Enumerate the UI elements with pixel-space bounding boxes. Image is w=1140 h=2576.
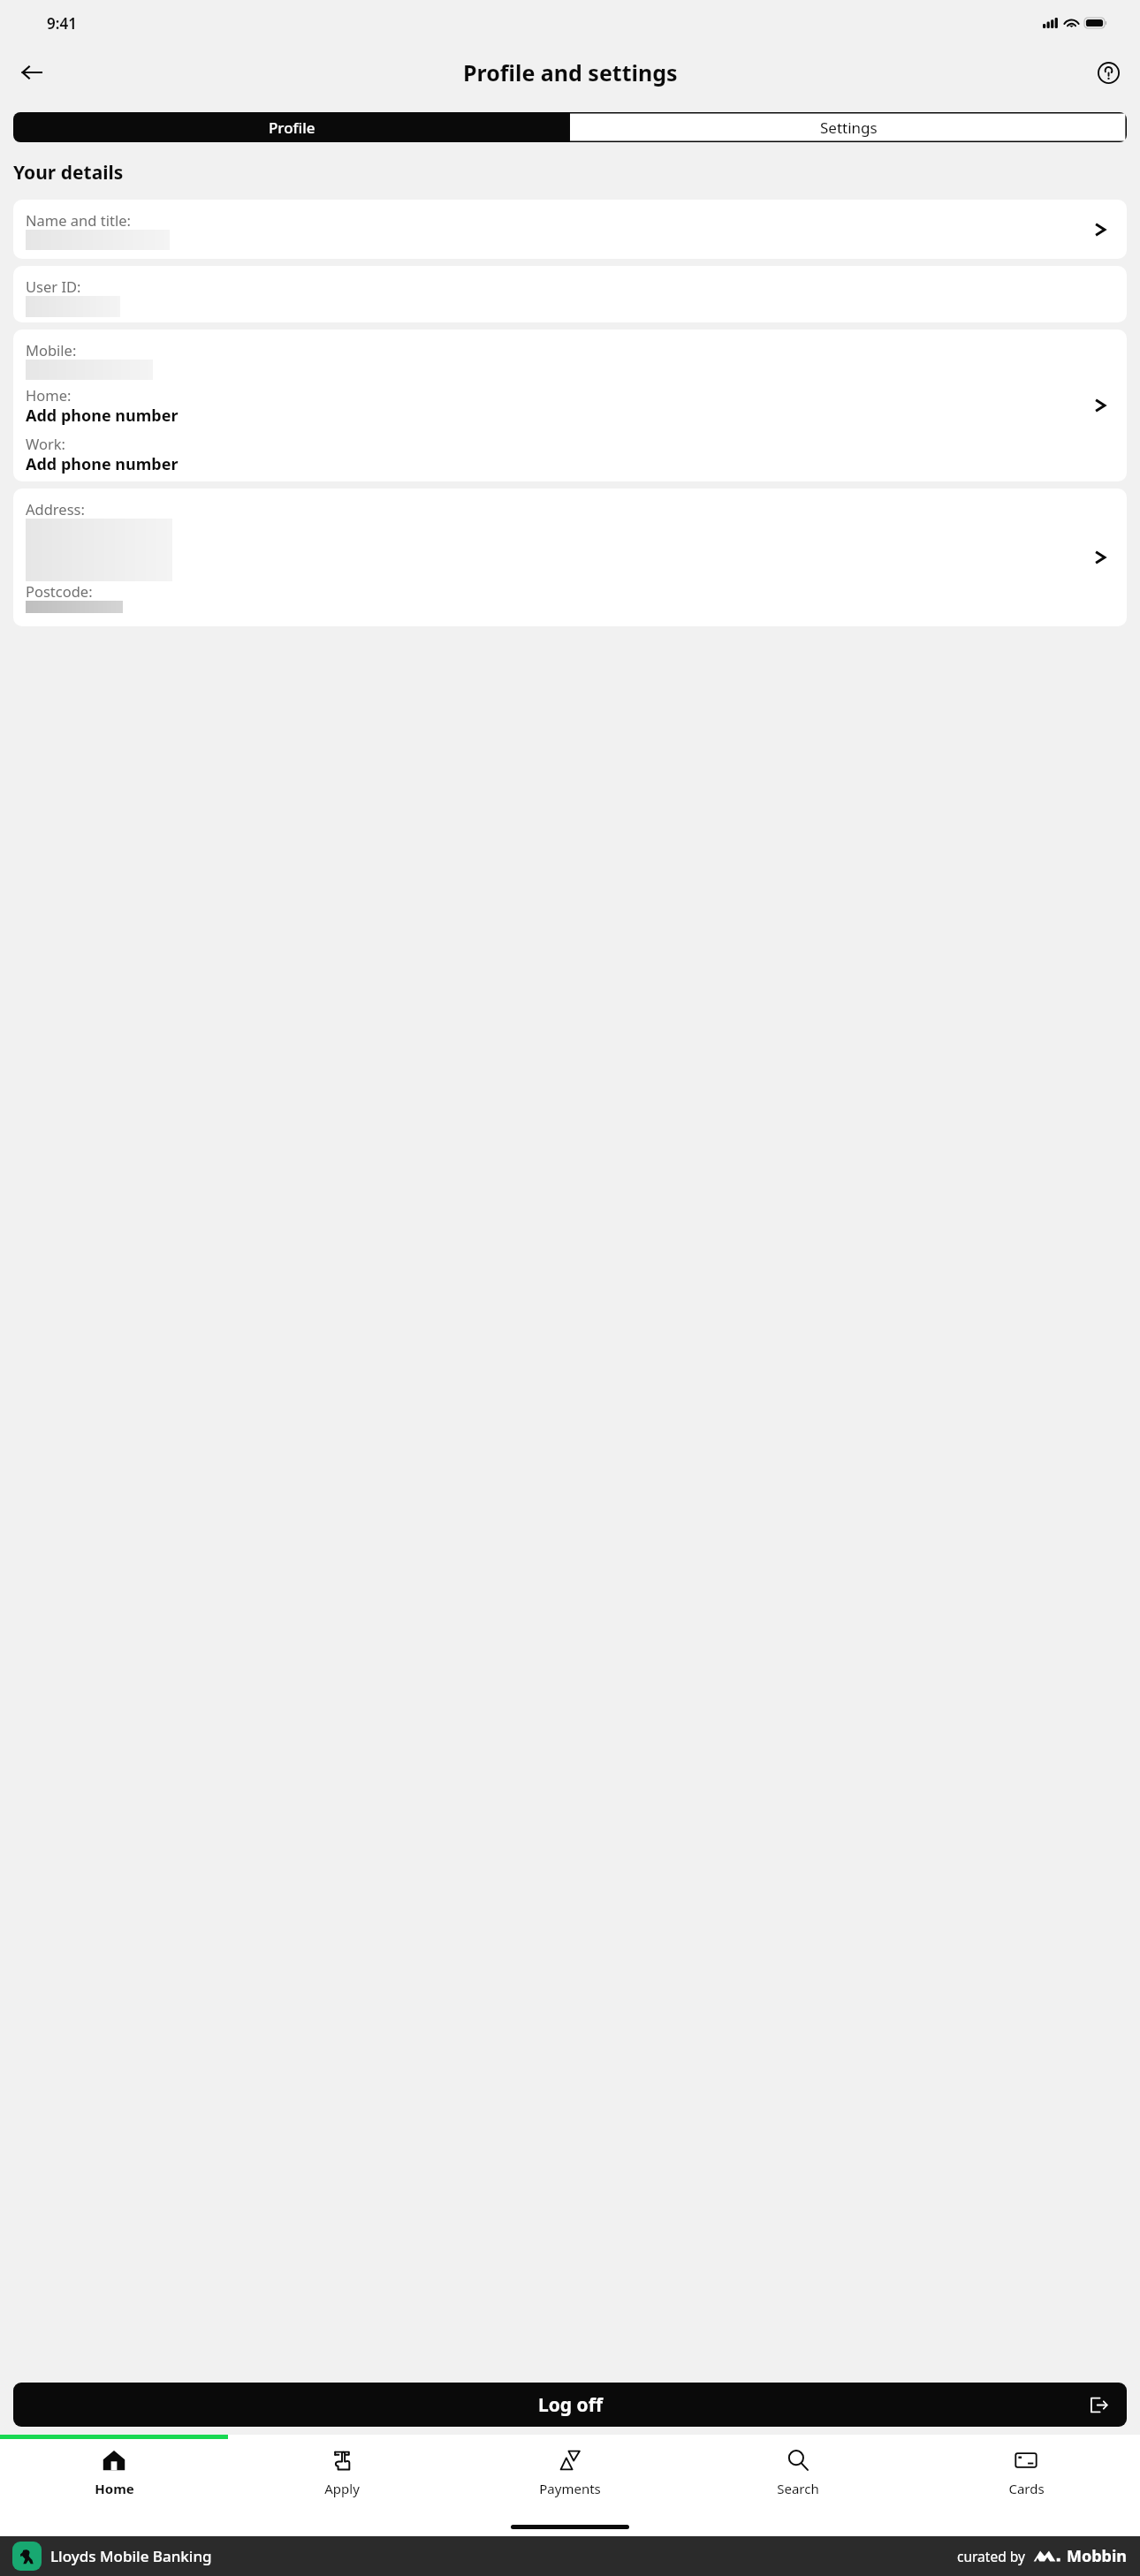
button[interactable]: Log off [13, 2383, 1127, 2427]
staticText: Your details [13, 160, 124, 186]
staticText: Add phone number [26, 405, 179, 427]
staticText: 9:41 [47, 13, 77, 34]
staticText: Add phone number [26, 453, 179, 475]
staticText: Mobbin [1067, 2545, 1128, 2567]
staticText: Log off [538, 2392, 603, 2418]
staticText: User ID: [26, 277, 81, 296]
staticText: Cards [1008, 2480, 1045, 2497]
staticText: Profile and settings [463, 57, 678, 87]
button[interactable]: Back [11, 51, 53, 94]
staticText: Apply [324, 2480, 360, 2497]
button[interactable]: Settings [570, 112, 1127, 142]
staticText: curated by [957, 2547, 1025, 2565]
staticText: Home [95, 2480, 134, 2497]
button[interactable]: Cards [912, 2439, 1140, 2517]
button[interactable]: Home [0, 2439, 228, 2517]
staticText: Name and title: [26, 210, 131, 230]
button[interactable]: User ID: [13, 266, 1127, 322]
staticText: Search [777, 2480, 819, 2497]
button[interactable]: Apply [228, 2439, 456, 2517]
staticText: Work: [26, 434, 66, 453]
button[interactable]: Search [684, 2439, 912, 2517]
staticText: Payments [539, 2480, 601, 2497]
staticText: Mobile: [26, 340, 77, 360]
staticText: Address: [26, 499, 85, 519]
button[interactable]: Payments [456, 2439, 684, 2517]
button[interactable]: Profile [13, 112, 570, 142]
button[interactable]: Address: [13, 489, 1127, 626]
staticText: Lloyds Mobile Banking [50, 2546, 212, 2566]
staticText: Postcode: [26, 581, 93, 601]
staticText: Home: [26, 385, 72, 405]
button[interactable]: Name and title: [13, 200, 1127, 259]
button[interactable]: Mobile: [13, 330, 1127, 481]
button[interactable]: Help [1087, 51, 1129, 94]
staticText: Settings [820, 117, 878, 138]
staticText: Profile [269, 117, 315, 138]
